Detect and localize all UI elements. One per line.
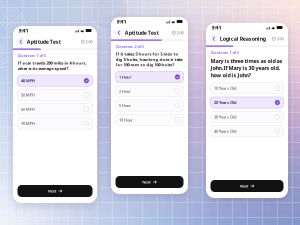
staticText: If it takes 5 hours for 5 men to dig 5 h… — [115, 51, 182, 67]
button[interactable]: 2 Hour — [115, 86, 183, 97]
button[interactable]: 20 Years Old — [210, 97, 283, 108]
button[interactable]: 5 Hour — [115, 100, 183, 111]
staticText: 2 Hour — [119, 89, 131, 94]
button[interactable]: 70 MPH — [17, 118, 92, 129]
staticText: Logical Reasoning — [220, 35, 266, 42]
staticText: Question 1 of 3 — [17, 53, 45, 58]
staticText: If a car travels 200 miles in 4 hours, w… — [17, 60, 86, 71]
staticText: 30 Years Old — [214, 114, 236, 119]
button[interactable]: 30 Years Old — [210, 111, 283, 122]
staticText: Next — [48, 188, 57, 194]
button[interactable]: 10 Hour — [115, 114, 183, 125]
button[interactable]: 40 MPH — [17, 75, 92, 86]
button[interactable]: Next — [115, 176, 183, 188]
button[interactable]: Back — [115, 29, 122, 37]
staticText: 2:00 — [176, 30, 183, 35]
staticText: 10 Years Old — [214, 86, 236, 91]
staticText: Aptitude Test — [27, 38, 61, 45]
button[interactable]: Back — [210, 35, 217, 43]
staticText: 9:41 — [211, 24, 221, 31]
staticText: 1 Hour — [119, 74, 132, 80]
staticText: 50 MPH — [21, 92, 35, 98]
staticText: Mary is three times as old as John. If M… — [210, 57, 282, 79]
staticText: Question 1 of 3 — [210, 50, 238, 55]
button[interactable]: 60 MPH — [17, 104, 92, 115]
staticText: Next — [142, 179, 151, 185]
staticText: Next — [240, 183, 249, 189]
staticText: 2:00 — [85, 39, 92, 44]
staticText: 10 Hour — [119, 117, 133, 122]
button[interactable]: Next — [210, 180, 283, 192]
staticText: 9:41 — [18, 27, 28, 34]
staticText: 40 Years Old — [214, 128, 236, 134]
staticText: Question 2 of 3 — [115, 44, 143, 49]
button[interactable]: 1 Hour — [115, 71, 183, 82]
staticText: 40 MPH — [21, 78, 35, 83]
button[interactable]: 50 MPH — [17, 89, 92, 100]
staticText: 70 MPH — [21, 121, 35, 126]
staticText: 5 Hour — [119, 103, 131, 108]
button[interactable]: 10 Years Old — [210, 83, 283, 94]
button[interactable]: 40 Years Old — [210, 126, 283, 137]
button[interactable]: Next — [17, 185, 92, 197]
staticText: Aptitude Test — [125, 29, 159, 36]
button[interactable]: Back — [17, 38, 24, 46]
staticText: 60 MPH — [21, 107, 35, 112]
staticText: 9:41 — [116, 18, 126, 25]
staticText: 2:00 — [276, 36, 283, 41]
staticText: 20 Years Old — [214, 100, 237, 105]
